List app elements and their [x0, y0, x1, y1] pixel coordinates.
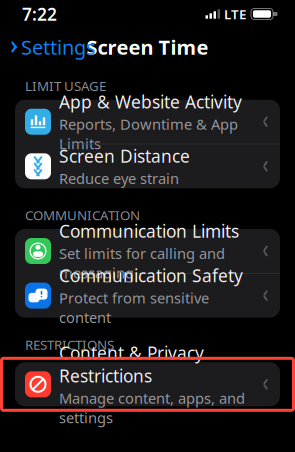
- staticText: Communication Limits: [59, 219, 239, 242]
- staticText: Screen Time: [86, 34, 208, 60]
- button[interactable]: Communication Safety: [15, 274, 280, 318]
- staticText: Communication Safety: [59, 264, 243, 287]
- staticText: Set limits for calling and messaging: [59, 243, 225, 282]
- staticText: Protect from sensitive content: [59, 288, 209, 327]
- staticText: Manage content, apps, and settings: [59, 388, 245, 427]
- staticText: Reports, Downtime & App Limits: [59, 114, 238, 153]
- staticText: Settings: [21, 34, 96, 60]
- button[interactable]: App & Website Activity: [15, 100, 280, 144]
- staticText: Reduce eye strain: [59, 169, 179, 188]
- button[interactable]: Settings: [0, 28, 96, 66]
- button[interactable]: Communication Limits: [15, 229, 280, 274]
- staticText: Content & Privacy Restrictions: [59, 341, 204, 387]
- staticText: COMMUNICATION: [25, 206, 140, 224]
- staticText: LIMIT USAGE: [25, 77, 106, 95]
- button[interactable]: Screen Distance: [15, 144, 280, 188]
- staticText: App & Website Activity: [59, 90, 242, 113]
- staticText: Screen Distance: [59, 145, 190, 168]
- staticText: LTE: [224, 5, 246, 23]
- button[interactable]: Content & Privacy Restrictions: [15, 362, 280, 406]
- staticText: RESTRICTIONS: [25, 336, 114, 353]
- staticText: 7:22: [22, 2, 57, 25]
